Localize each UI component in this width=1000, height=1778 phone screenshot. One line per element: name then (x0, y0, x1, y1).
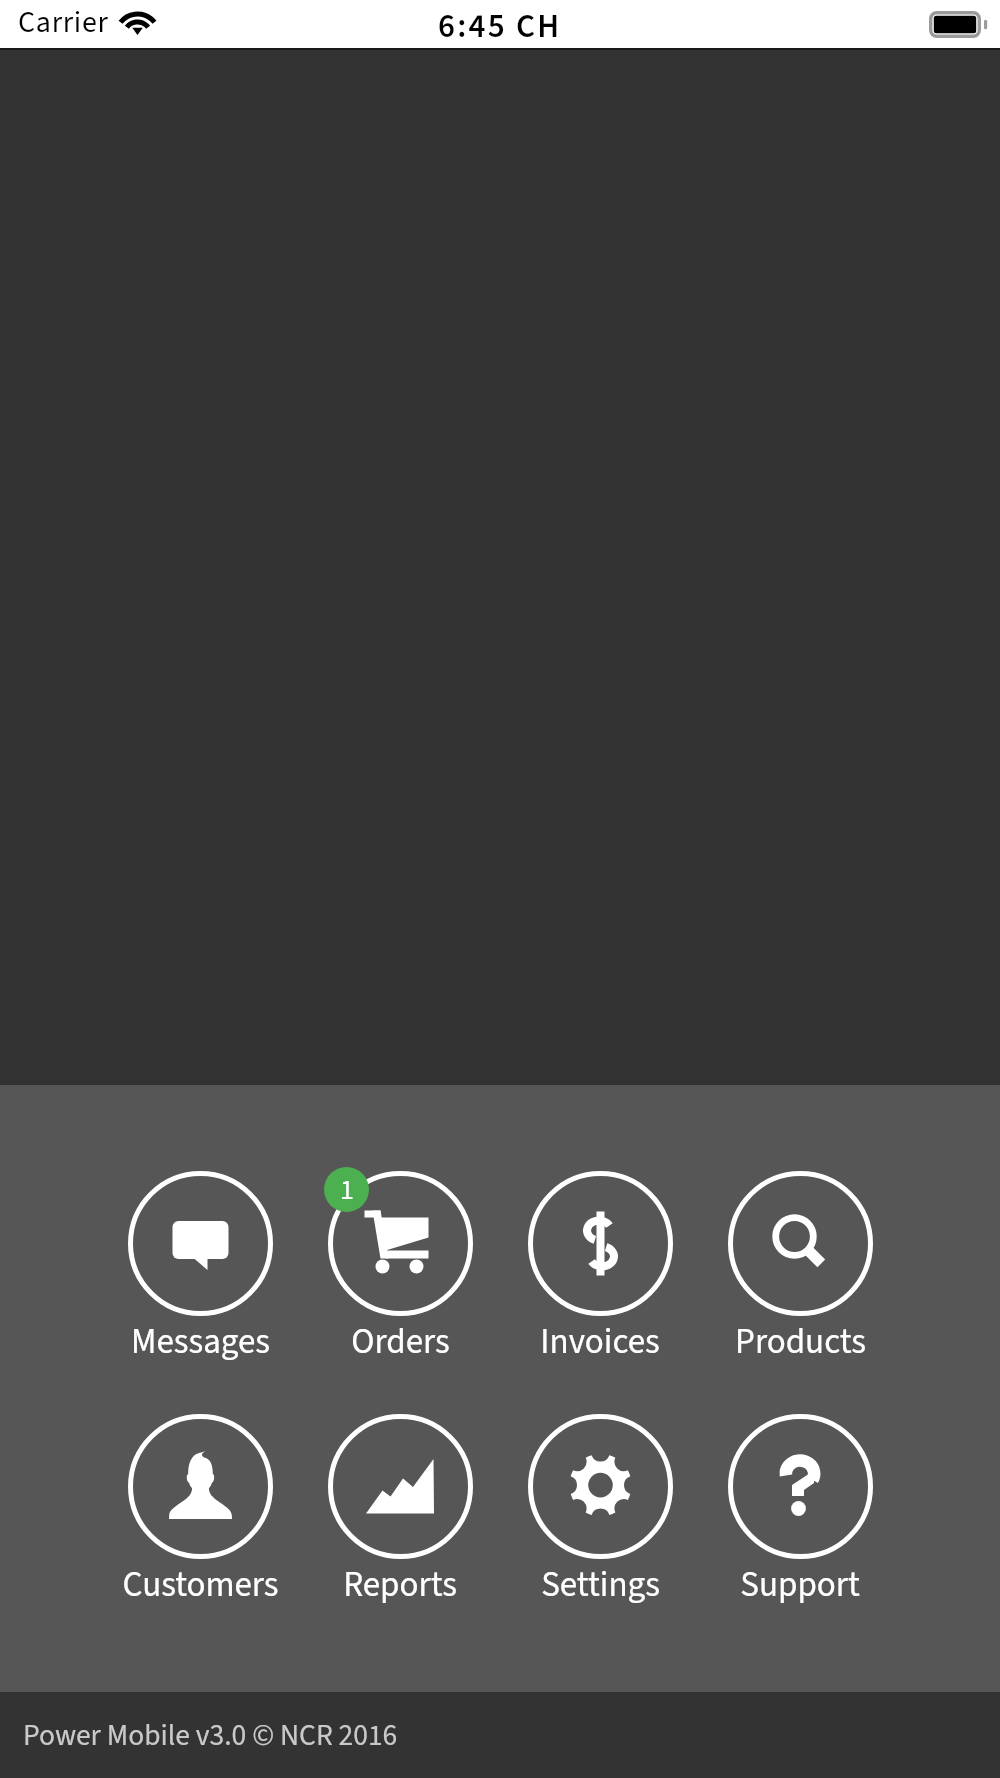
button[interactable]: Support (700, 1414, 900, 1610)
staticText: Power Mobile v3.0 © NCR 2016 (23, 1715, 398, 1757)
button[interactable]: Invoices (500, 1171, 700, 1367)
staticText: 6:45 CH (438, 3, 562, 50)
button[interactable]: Reports (300, 1414, 500, 1610)
button[interactable]: Products (700, 1171, 900, 1367)
staticText: Carrier (18, 1, 109, 44)
staticText: Support (740, 1560, 860, 1610)
staticText: Settings (541, 1560, 660, 1610)
staticText: Messages (131, 1317, 270, 1367)
button[interactable]: 1 (300, 1171, 500, 1367)
button[interactable]: Customers (100, 1414, 300, 1610)
staticText: Reports (343, 1560, 457, 1610)
staticText: 1 (340, 1170, 354, 1210)
staticText: Customers (122, 1560, 279, 1610)
button[interactable]: Messages (100, 1171, 300, 1367)
staticText: Products (735, 1317, 866, 1367)
staticText: Orders (351, 1317, 450, 1367)
button[interactable]: Settings (500, 1414, 700, 1610)
staticText: Invoices (540, 1317, 660, 1367)
